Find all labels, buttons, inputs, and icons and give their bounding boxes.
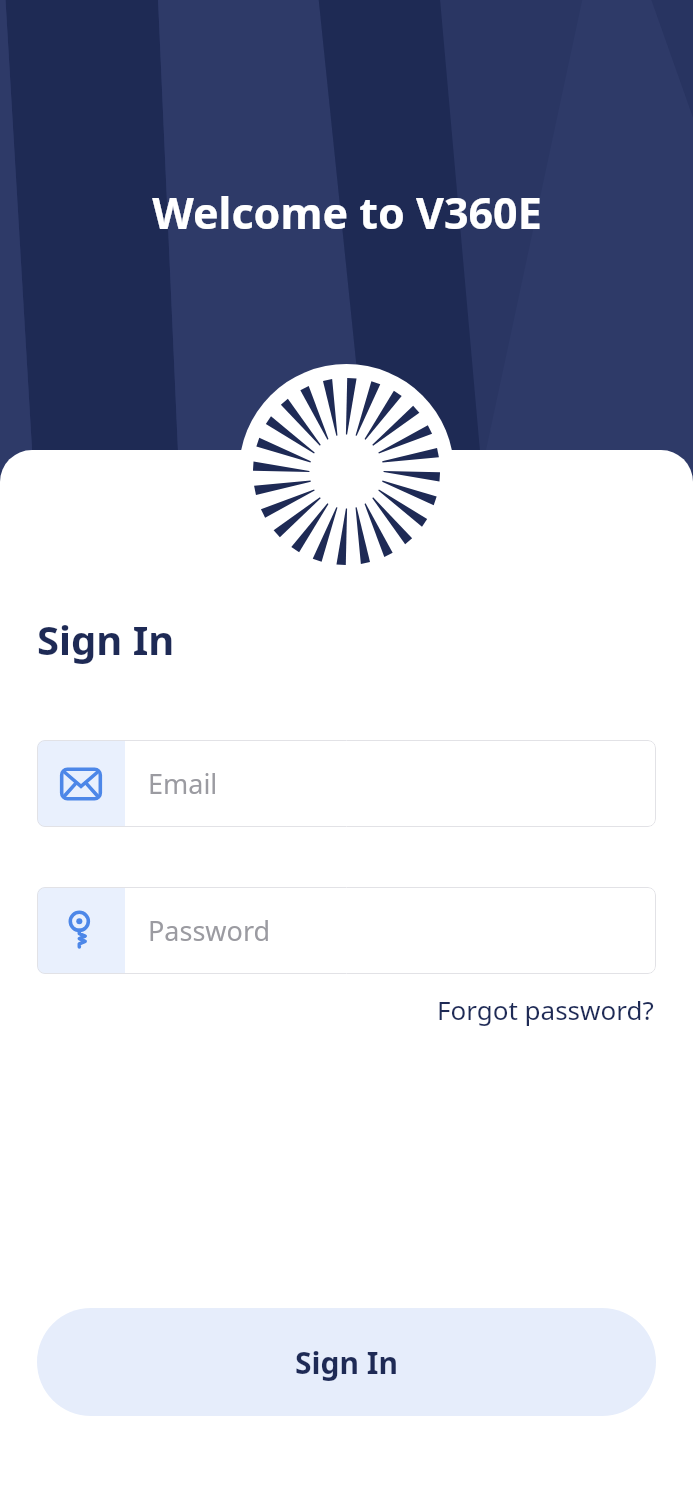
staticText: Email xyxy=(148,765,218,802)
button[interactable]: Forgot password? xyxy=(435,988,656,1031)
staticText: Welcome to V360E xyxy=(152,183,542,242)
button[interactable]: Email xyxy=(37,740,656,827)
staticText: Forgot password? xyxy=(437,992,654,1027)
staticText: Password xyxy=(148,912,271,949)
button[interactable]: Sign In xyxy=(37,1308,656,1416)
button[interactable]: Password xyxy=(37,887,656,974)
staticText: Sign In xyxy=(295,1342,398,1383)
staticText: Sign In xyxy=(37,612,175,666)
